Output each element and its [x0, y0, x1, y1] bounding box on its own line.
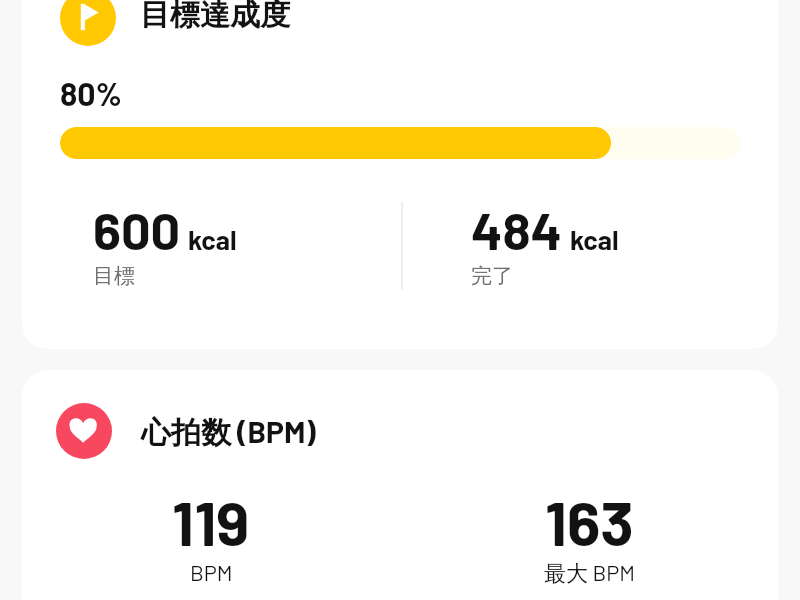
staticText: 完了: [471, 263, 513, 289]
staticText: kcal: [570, 223, 619, 255]
staticText: kcal: [188, 223, 237, 255]
staticText: BPM: [190, 559, 233, 585]
staticText: 484: [471, 198, 563, 260]
button[interactable]: Goal achievement: [22, 0, 778, 349]
staticText: 心拍数 (BPM): [141, 413, 316, 452]
staticText: 80%: [60, 74, 122, 112]
other: Goal achievement: [60, 0, 116, 46]
staticText: 目標達成度: [140, 0, 290, 34]
button[interactable]: Heart rate: [22, 370, 778, 600]
other: Heart rate: [56, 403, 112, 459]
staticText: 最大 BPM: [544, 559, 635, 588]
staticText: 600: [93, 198, 181, 260]
staticText: 119: [172, 484, 250, 558]
staticText: 163: [545, 484, 634, 558]
staticText: 目標: [93, 263, 135, 289]
